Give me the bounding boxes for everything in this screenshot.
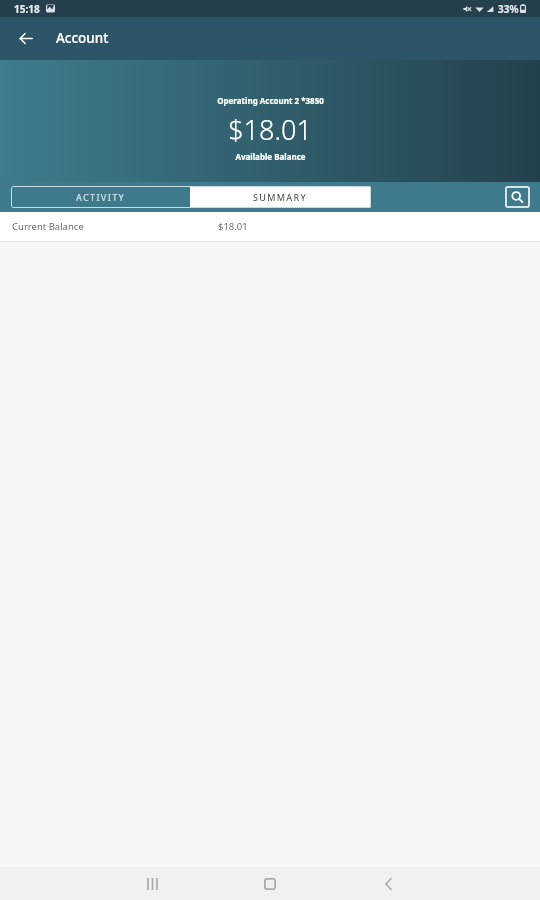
button[interactable]: ACTIVITY bbox=[11, 186, 190, 208]
button[interactable]: Current Balance bbox=[0, 212, 540, 241]
staticText: Operating Account 2 *3850 bbox=[217, 95, 324, 106]
button[interactable]: Back bbox=[7, 20, 44, 57]
staticText: 15:18 bbox=[14, 2, 40, 16]
staticText: ACTIVITY bbox=[76, 191, 126, 203]
staticText: 33% bbox=[498, 2, 519, 16]
staticText: $18.01 bbox=[228, 111, 312, 148]
staticText: SUMMARY bbox=[253, 191, 308, 203]
staticText: $18.01 bbox=[218, 220, 248, 233]
button[interactable]: Home bbox=[230, 867, 310, 900]
button[interactable]: Search bbox=[505, 186, 530, 208]
button[interactable]: Back bbox=[348, 867, 428, 900]
button[interactable]: Recent apps bbox=[112, 867, 192, 900]
staticText: Account bbox=[56, 29, 109, 47]
button[interactable]: SUMMARY bbox=[190, 186, 371, 208]
staticText: Available Balance bbox=[235, 151, 306, 162]
staticText: Current Balance bbox=[12, 220, 84, 233]
